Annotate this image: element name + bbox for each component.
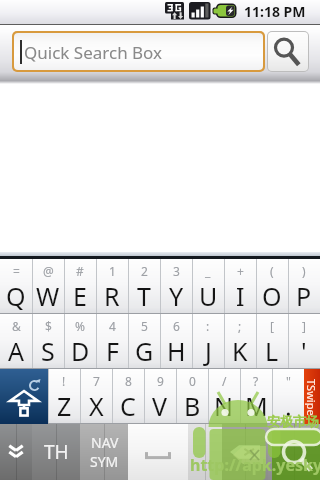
staticText: Y bbox=[169, 279, 184, 313]
staticText: E bbox=[73, 279, 87, 313]
button[interactable]: Space bbox=[128, 424, 188, 480]
staticText: T bbox=[137, 279, 151, 313]
staticText: 9 bbox=[157, 373, 164, 389]
staticText: TH bbox=[44, 439, 69, 465]
staticText: B bbox=[184, 389, 201, 423]
button[interactable]: / bbox=[208, 369, 240, 424]
staticText: ? bbox=[253, 373, 259, 389]
button[interactable]: 9 bbox=[144, 369, 176, 424]
button[interactable]: 1 bbox=[96, 259, 128, 314]
button[interactable]: 5 bbox=[128, 314, 160, 369]
staticText: 7 bbox=[93, 373, 100, 389]
staticText: _ bbox=[205, 263, 211, 279]
staticText: % bbox=[75, 318, 85, 334]
button[interactable]: 2 bbox=[128, 259, 160, 314]
staticText: ; bbox=[238, 318, 242, 334]
staticText: O bbox=[262, 279, 282, 313]
button[interactable]: Search bbox=[268, 32, 308, 71]
staticText: NAV bbox=[91, 433, 119, 452]
staticText: [ bbox=[270, 318, 274, 334]
staticText: 3 bbox=[173, 263, 180, 279]
button[interactable]: # bbox=[64, 259, 96, 314]
button[interactable]: TSwipe bbox=[304, 369, 320, 424]
staticText: R bbox=[104, 279, 120, 313]
staticText: U bbox=[199, 279, 218, 313]
staticText: L bbox=[265, 334, 279, 368]
staticText: TSwipe bbox=[305, 379, 319, 416]
button[interactable]: Shift bbox=[0, 369, 48, 424]
staticText: ) bbox=[302, 263, 306, 279]
staticText: . bbox=[285, 389, 292, 423]
button[interactable]: Comma bbox=[188, 424, 222, 480]
staticText: 5 bbox=[141, 318, 148, 334]
button[interactable]: Hide keyboard bbox=[0, 424, 32, 480]
staticText: Q bbox=[6, 279, 26, 313]
staticText: 6 bbox=[173, 318, 180, 334]
staticText: K bbox=[232, 334, 248, 368]
button[interactable]: _ bbox=[192, 259, 224, 314]
staticText: P bbox=[296, 279, 312, 313]
staticText: # bbox=[76, 263, 84, 279]
staticText: ! bbox=[62, 373, 66, 389]
staticText: I bbox=[236, 279, 245, 313]
staticText: $ bbox=[45, 318, 52, 334]
staticText: 2 bbox=[141, 263, 148, 279]
button[interactable]: % bbox=[64, 314, 96, 369]
staticText: ' bbox=[301, 334, 307, 368]
staticText: M bbox=[245, 389, 268, 423]
button[interactable]: + bbox=[224, 259, 256, 314]
staticText: J bbox=[205, 334, 212, 368]
staticText: = bbox=[13, 263, 20, 279]
button[interactable]: 8 bbox=[112, 369, 144, 424]
staticText: 8 bbox=[125, 373, 132, 389]
staticText: V bbox=[152, 389, 168, 423]
staticText: C bbox=[120, 389, 136, 423]
button[interactable]: 7 bbox=[80, 369, 112, 424]
staticText: X bbox=[89, 389, 104, 423]
button[interactable]: 0 bbox=[176, 369, 208, 424]
staticText: D bbox=[71, 334, 90, 368]
staticText: ] bbox=[302, 318, 306, 334]
button[interactable]: 3 bbox=[160, 259, 192, 314]
button[interactable]: Quick Search Box bbox=[14, 33, 263, 70]
button[interactable]: @ bbox=[32, 259, 64, 314]
staticText: S bbox=[41, 334, 55, 368]
button[interactable]: 6 bbox=[160, 314, 192, 369]
button[interactable]: " bbox=[272, 369, 304, 424]
button[interactable]: ] bbox=[288, 314, 320, 369]
staticText: 4 bbox=[109, 318, 116, 334]
staticText: Quick Search Box bbox=[24, 41, 163, 64]
button[interactable]: Backspace bbox=[222, 424, 268, 480]
staticText: http://apk.yesky.com bbox=[190, 454, 320, 476]
button[interactable]: ; bbox=[224, 314, 256, 369]
staticText: 11:18 PM bbox=[244, 2, 306, 21]
staticText: A bbox=[8, 334, 24, 368]
staticText: N bbox=[214, 389, 234, 423]
button[interactable]: & bbox=[0, 314, 32, 369]
staticText: 安极市场 bbox=[267, 413, 319, 429]
button[interactable]: Return bbox=[268, 424, 320, 480]
button[interactable]: ( bbox=[256, 259, 288, 314]
staticText: ( bbox=[270, 263, 274, 279]
button[interactable]: ) bbox=[288, 259, 320, 314]
staticText: : bbox=[206, 318, 210, 334]
button[interactable]: [ bbox=[256, 314, 288, 369]
staticText: / bbox=[222, 373, 227, 389]
button[interactable]: = bbox=[0, 259, 32, 314]
staticText: W bbox=[36, 279, 60, 313]
button[interactable]: ! bbox=[48, 369, 80, 424]
button[interactable]: : bbox=[192, 314, 224, 369]
button[interactable]: NAV bbox=[80, 424, 128, 480]
staticText: SYM bbox=[90, 452, 119, 471]
staticText: 0 bbox=[189, 373, 196, 389]
button[interactable]: $ bbox=[32, 314, 64, 369]
button[interactable]: ? bbox=[240, 369, 272, 424]
staticText: & bbox=[12, 318, 21, 334]
staticText: " bbox=[286, 373, 291, 389]
button[interactable]: TH bbox=[32, 424, 80, 480]
staticText: H bbox=[167, 334, 186, 368]
staticText: @ bbox=[43, 263, 54, 279]
staticText: G bbox=[135, 334, 154, 368]
staticText: F bbox=[106, 334, 119, 368]
button[interactable]: 4 bbox=[96, 314, 128, 369]
